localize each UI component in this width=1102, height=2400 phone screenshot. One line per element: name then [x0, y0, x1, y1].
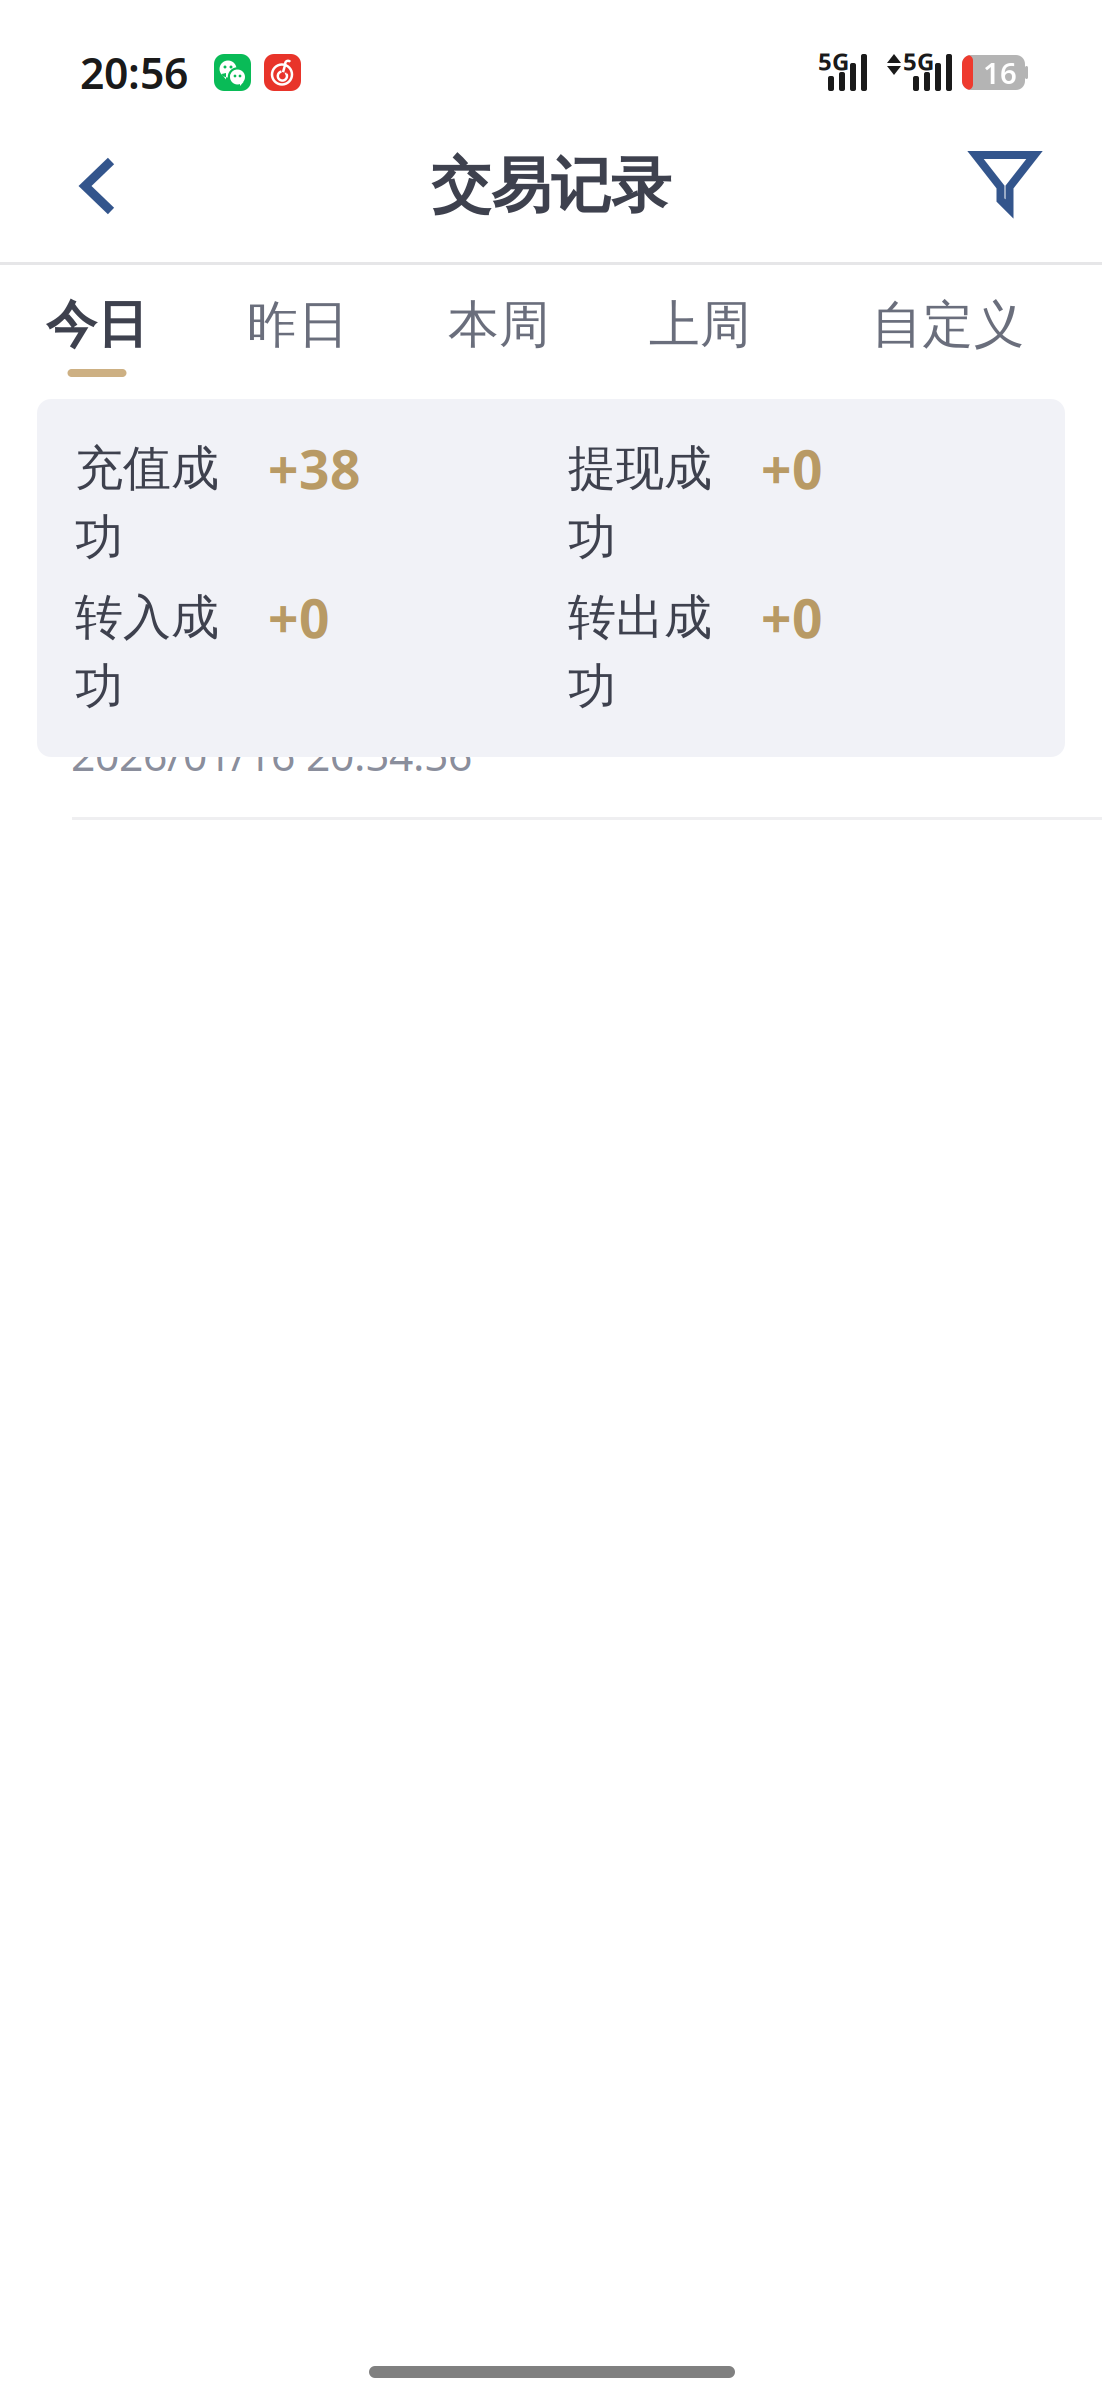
- button[interactable]: 本周: [424, 265, 574, 401]
- staticText: 5G: [903, 45, 934, 77]
- staticText: 自定义: [871, 294, 1024, 356]
- staticText: 昨日: [247, 294, 349, 356]
- staticText: 交易记录: [431, 149, 671, 223]
- staticText: 提现成: [568, 439, 712, 498]
- staticText: 本周: [448, 294, 550, 356]
- staticText: 20:56: [80, 44, 188, 101]
- staticText: 功: [568, 508, 616, 567]
- button[interactable]: 筛选: [953, 131, 1057, 241]
- staticText: 5G: [818, 45, 849, 77]
- button[interactable]: 返回: [46, 131, 150, 241]
- button[interactable]: 自定义: [848, 265, 1048, 401]
- staticText: +38: [268, 433, 361, 504]
- button[interactable]: 上周: [625, 265, 775, 401]
- staticText: 功: [75, 657, 123, 716]
- staticText: 16: [983, 53, 1017, 92]
- staticText: +0: [761, 433, 823, 504]
- button[interactable]: 昨日: [223, 265, 373, 401]
- button[interactable]: 今日: [22, 265, 172, 401]
- staticText: 转入成: [75, 588, 219, 647]
- staticText: 今日: [46, 294, 148, 356]
- staticText: 功: [568, 657, 616, 716]
- staticText: +0: [268, 582, 330, 653]
- staticText: 转出成: [568, 588, 712, 647]
- staticText: 2026/01/16 20:54:56: [71, 726, 472, 783]
- staticText: 上周: [649, 294, 751, 356]
- staticText: 充值成: [75, 439, 219, 498]
- staticText: 功: [75, 508, 123, 567]
- staticText: +0: [761, 582, 823, 653]
